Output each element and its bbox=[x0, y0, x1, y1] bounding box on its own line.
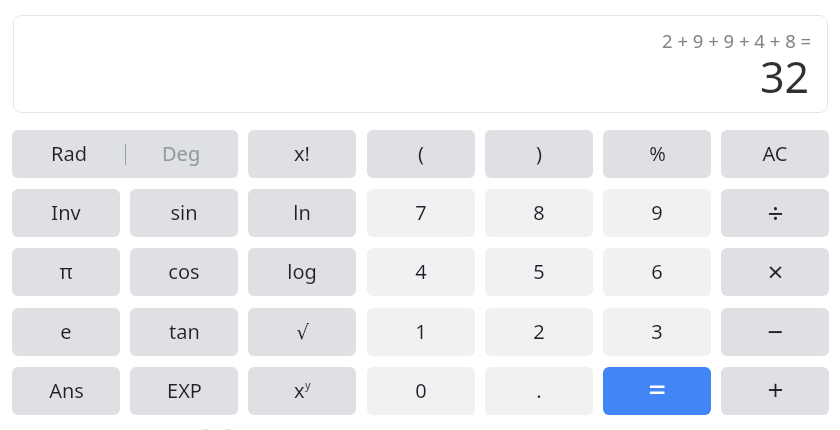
staticText: − bbox=[767, 312, 784, 350]
staticText: 2 + 9 + 9 + 4 + 8 = bbox=[662, 28, 812, 53]
button[interactable]: Multiply bbox=[721, 248, 829, 296]
button[interactable]: Divide bbox=[721, 189, 829, 237]
staticText: EXP bbox=[167, 377, 202, 404]
staticText: cos bbox=[168, 258, 200, 285]
staticText: . bbox=[536, 377, 542, 404]
staticText: sin bbox=[170, 199, 198, 226]
button[interactable]: Factorial bbox=[248, 130, 356, 178]
button[interactable]: Close bracket bbox=[485, 130, 593, 178]
button[interactable]: sin bbox=[130, 189, 238, 237]
staticText: x! bbox=[294, 140, 310, 167]
staticText: Inv bbox=[51, 199, 81, 226]
staticText: 1 bbox=[415, 318, 427, 345]
button[interactable]: 3 bbox=[603, 308, 711, 356]
button[interactable]: Percent bbox=[603, 130, 711, 178]
button[interactable]: 2 + 9 + 9 + 4 + 8 = bbox=[13, 15, 828, 113]
button[interactable]: cos bbox=[130, 248, 238, 296]
staticText: 7 bbox=[415, 199, 427, 226]
button[interactable]: 5 bbox=[485, 248, 593, 296]
staticText: ÷ bbox=[767, 193, 784, 231]
staticText: Rad bbox=[51, 140, 87, 167]
staticText: Ans bbox=[49, 377, 84, 404]
button[interactable]: 9 bbox=[603, 189, 711, 237]
button[interactable]: tan bbox=[130, 308, 238, 356]
button[interactable]: Minus bbox=[721, 308, 829, 356]
button[interactable]: 0 bbox=[367, 367, 475, 415]
staticText: 0 bbox=[415, 377, 427, 404]
button[interactable]: Open bracket bbox=[367, 130, 475, 178]
staticText: Deg bbox=[162, 140, 201, 167]
staticText: tan bbox=[169, 318, 200, 345]
button[interactable]: Rad bbox=[12, 130, 125, 178]
button[interactable]: x to the power of y bbox=[248, 367, 356, 415]
button[interactable]: Pi bbox=[12, 248, 120, 296]
button[interactable]: Square root bbox=[248, 308, 356, 356]
button[interactable]: EXP bbox=[130, 367, 238, 415]
staticText: x bbox=[294, 377, 305, 404]
button[interactable]: Inv bbox=[12, 189, 120, 237]
button[interactable]: e bbox=[12, 308, 120, 356]
staticText: ( bbox=[418, 140, 424, 167]
staticText: 3 bbox=[651, 318, 663, 345]
staticText: 5 bbox=[533, 258, 545, 285]
staticText: y bbox=[305, 377, 311, 392]
button[interactable]: Plus bbox=[721, 367, 829, 415]
staticText: √ bbox=[296, 320, 309, 343]
button[interactable]: 2 bbox=[485, 308, 593, 356]
staticText: 9 bbox=[651, 199, 663, 226]
staticText: 32 bbox=[760, 47, 810, 106]
button[interactable]: Deg bbox=[125, 130, 237, 178]
staticText: ) bbox=[536, 140, 542, 167]
staticText: ln bbox=[293, 199, 311, 226]
button[interactable]: ln bbox=[248, 189, 356, 237]
staticText: 4 bbox=[415, 258, 427, 285]
button[interactable]: 4 bbox=[367, 248, 475, 296]
staticText: + bbox=[767, 370, 784, 408]
staticText: = bbox=[648, 368, 666, 410]
button[interactable]: Decimal point bbox=[485, 367, 593, 415]
staticText: log bbox=[287, 258, 317, 285]
staticText: AC bbox=[762, 140, 788, 167]
button[interactable]: 7 bbox=[367, 189, 475, 237]
button[interactable]: 1 bbox=[367, 308, 475, 356]
staticText: π bbox=[59, 258, 73, 285]
staticText: e bbox=[60, 318, 72, 345]
staticText: 2 bbox=[533, 318, 545, 345]
staticText: 6 bbox=[651, 258, 663, 285]
staticText: % bbox=[649, 140, 666, 167]
button[interactable]: 8 bbox=[485, 189, 593, 237]
staticText: × bbox=[767, 252, 784, 290]
staticText: 8 bbox=[533, 199, 545, 226]
button[interactable]: Ans bbox=[12, 367, 120, 415]
button[interactable]: AC bbox=[721, 130, 829, 178]
button[interactable]: log bbox=[248, 248, 356, 296]
button[interactable]: Equals bbox=[603, 367, 711, 415]
button[interactable]: 6 bbox=[603, 248, 711, 296]
